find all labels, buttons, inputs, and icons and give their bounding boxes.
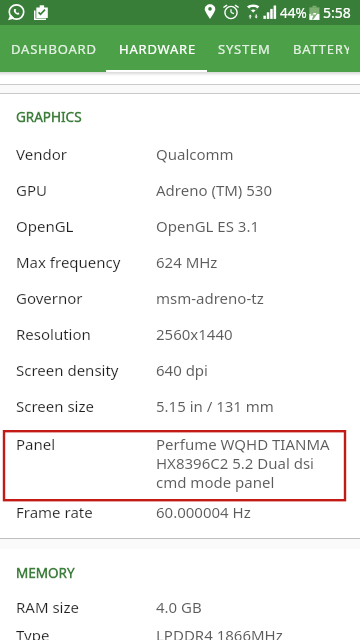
staticText: GRAPHICS [16,108,82,126]
button[interactable]: DASHBOARD [0,25,108,72]
staticText: BATTERY [293,40,349,58]
button[interactable]: BATTERY [282,25,360,72]
staticText: Type [16,625,156,640]
staticText: Adreno (TM) 530 [156,180,272,200]
staticText: OpenGL [16,216,156,236]
staticText: Screen density [16,360,156,380]
staticText: Max frequency [16,252,156,272]
button[interactable]: Screen density [0,352,360,388]
staticText: LPDDR4 1866MHz [156,625,283,640]
button[interactable]: Type [0,625,360,640]
button[interactable]: RAM size [0,589,360,625]
button[interactable]: Vendor [0,136,360,172]
button[interactable]: Frame rate [0,494,360,530]
button[interactable]: Governor [0,280,360,316]
staticText: Panel [16,434,156,454]
staticText: 5.15 in / 131 mm [156,396,274,416]
button[interactable]: Panel [0,424,360,494]
staticText: Perfume WQHD TIANMA HX8396C2 5.2 Dual ds… [156,434,334,492]
staticText: RAM size [16,597,156,617]
button[interactable]: Max frequency [0,244,360,280]
staticText: 640 dpi [156,360,208,380]
staticText: 44% [280,4,307,22]
staticText: msm-adreno-tz [156,288,264,308]
staticText: 5:58 [323,3,351,22]
staticText: 60.000004 Hz [156,502,251,522]
staticText: GPU [16,180,156,200]
staticText: OpenGL ES 3.1 [156,216,260,236]
staticText: Screen size [16,396,156,416]
staticText: 2560x1440 [156,324,233,344]
staticText: DASHBOARD [11,40,97,58]
staticText: Governor [16,288,156,308]
staticText: Resolution [16,324,156,344]
staticText: HARDWARE [119,40,196,58]
button[interactable]: HARDWARE [108,25,207,72]
button[interactable]: OpenGL [0,208,360,244]
button[interactable]: GPU [0,172,360,208]
button[interactable]: SYSTEM [207,25,282,72]
staticText: 4.0 GB [156,597,202,617]
staticText: MEMORY [16,564,75,582]
staticText: SYSTEM [218,40,271,58]
button[interactable]: Resolution [0,316,360,352]
button[interactable]: Screen size [0,388,360,424]
staticText: Qualcomm [156,144,234,164]
staticText: Frame rate [16,502,156,522]
staticText: 624 MHz [156,252,218,272]
staticText: Vendor [16,144,156,164]
